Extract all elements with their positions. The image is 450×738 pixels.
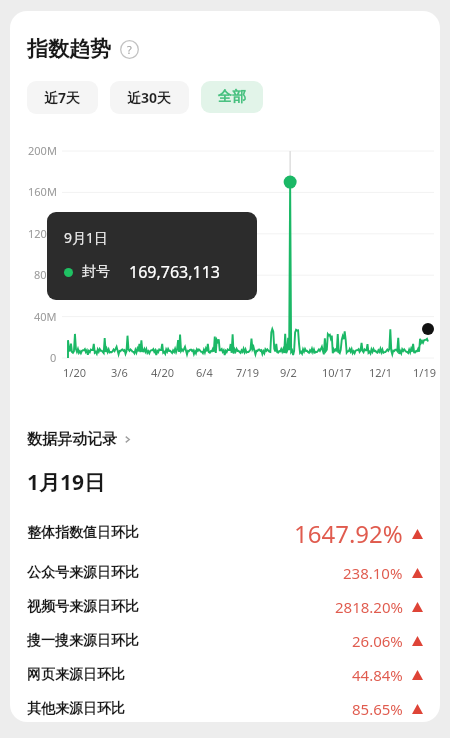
staticText: 1月19日 [27, 468, 106, 497]
staticText: 12/1 [369, 365, 392, 380]
staticText: 0 [50, 350, 57, 365]
staticText: 44.84% [352, 665, 403, 685]
button[interactable]: 数据异动记录 [27, 425, 133, 453]
staticText: 6/4 [196, 365, 213, 380]
staticText: 9/2 [280, 365, 297, 380]
button[interactable]: 网页来源日环比 [27, 658, 423, 692]
staticText: 120M [28, 226, 57, 241]
staticText: 近30天 [127, 88, 172, 107]
staticText: 9月1日 [64, 228, 109, 247]
staticText: 85.65% [352, 699, 403, 719]
staticText: 238.10% [343, 563, 403, 583]
staticText: 4/20 [151, 365, 174, 380]
button[interactable]: 全部 [201, 81, 263, 113]
button[interactable]: Help [120, 40, 139, 59]
button[interactable]: 视频号来源日环比 [27, 590, 423, 624]
staticText: ? [127, 42, 132, 57]
staticText: 数据异动记录 [27, 430, 117, 449]
staticText: 封号 [82, 263, 110, 281]
staticText: 1/19 [413, 365, 436, 380]
staticText: 1/20 [63, 365, 86, 380]
staticText: 160M [28, 184, 57, 199]
staticText: 26.06% [352, 631, 403, 651]
staticText: 1647.92% [294, 517, 403, 550]
button[interactable]: 搜一搜来源日环比 [27, 624, 423, 658]
staticText: 近7天 [44, 88, 81, 107]
button[interactable]: 其他来源日环比 [27, 692, 423, 722]
staticText: 2818.20% [335, 597, 403, 617]
staticText: 80M [34, 267, 57, 282]
staticText: 公众号来源日环比 [27, 564, 139, 582]
staticText: 10/17 [322, 365, 352, 380]
staticText: 指数趋势 [27, 36, 111, 62]
staticText: 搜一搜来源日环比 [27, 632, 139, 650]
staticText: 200M [28, 143, 57, 158]
button[interactable]: 近7天 [27, 81, 98, 114]
staticText: 整体指数值日环比 [27, 524, 139, 542]
button[interactable]: 公众号来源日环比 [27, 556, 423, 590]
staticText: 网页来源日环比 [27, 666, 125, 684]
staticText: 7/19 [236, 365, 259, 380]
staticText: 40M [34, 309, 57, 324]
staticText: 其他来源日环比 [27, 700, 125, 718]
button[interactable]: 整体指数值日环比 [27, 514, 423, 552]
staticText: 全部 [218, 88, 246, 106]
button[interactable]: 近30天 [110, 81, 189, 114]
staticText: 3/6 [111, 365, 128, 380]
staticText: 169,763,113 [129, 261, 220, 283]
staticText: 视频号来源日环比 [27, 598, 139, 616]
